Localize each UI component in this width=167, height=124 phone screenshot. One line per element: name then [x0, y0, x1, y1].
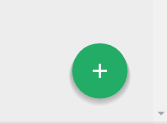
button[interactable]: Add [72, 43, 128, 99]
button[interactable]: Show more [153, 107, 167, 121]
